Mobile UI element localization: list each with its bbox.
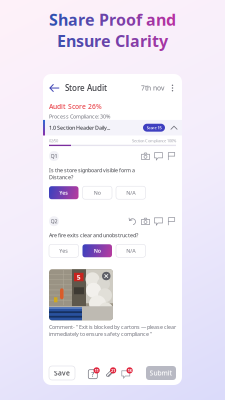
staticText: Save — [54, 369, 70, 377]
staticText: Yes — [59, 189, 68, 196]
staticText: r — [140, 30, 147, 51]
staticText: Section Compliance 100% — [132, 138, 176, 143]
staticText: 11 — [95, 368, 99, 373]
button[interactable]: Submit — [146, 366, 176, 380]
staticText: o — [126, 9, 136, 30]
button[interactable]: Comments — [121, 367, 133, 379]
staticText: No — [94, 247, 101, 254]
button[interactable]: Add photo — [141, 151, 150, 160]
staticText: 5 — [77, 273, 81, 281]
button[interactable]: No — [82, 244, 112, 257]
staticText: Are fire exits clear and unobstructed? — [49, 232, 138, 239]
staticText: 7th nov — [141, 84, 164, 92]
staticText: Process Compliance: 30% — [49, 113, 110, 120]
staticText: i — [147, 30, 152, 51]
button[interactable]: Flag issue — [167, 217, 176, 226]
staticText: Audit Score 26% — [49, 102, 102, 111]
staticText: h — [58, 9, 68, 30]
button[interactable]: More options — [164, 83, 176, 92]
staticText: r — [78, 9, 85, 30]
button[interactable]: Attachments — [104, 367, 117, 379]
staticText: l — [125, 30, 130, 51]
staticText: 18 — [128, 368, 132, 373]
button[interactable]: Save — [49, 366, 75, 380]
staticText: Is the store signboard visible form a Di… — [49, 166, 135, 181]
staticText: u — [84, 30, 94, 51]
staticText: n — [66, 30, 76, 51]
staticText: t — [152, 30, 159, 51]
staticText: Submit — [149, 369, 172, 377]
button[interactable]: No — [82, 186, 112, 199]
staticText: r — [109, 9, 116, 30]
staticText: N/A — [126, 189, 135, 196]
staticText: P — [99, 9, 109, 30]
staticText: y — [159, 30, 168, 51]
staticText: a — [68, 9, 78, 30]
button[interactable]: Back — [49, 83, 60, 93]
button[interactable]: Yes — [49, 244, 78, 257]
staticText: a — [130, 30, 140, 51]
button[interactable]: Flag issue — [167, 151, 176, 160]
button[interactable]: Undo — [128, 217, 137, 226]
staticText: No — [94, 189, 101, 196]
staticText: s — [76, 30, 84, 51]
staticText: Score 15 — [146, 125, 161, 130]
staticText: d — [166, 9, 176, 30]
staticText: e — [101, 30, 111, 51]
staticText: Q1 — [50, 152, 57, 160]
staticText: N/A — [126, 247, 135, 254]
staticText: Q2 — [50, 218, 57, 225]
staticText: n — [156, 9, 166, 30]
staticText: Store Audit — [65, 83, 107, 93]
button[interactable]: N/A — [116, 244, 145, 257]
staticText: a — [146, 9, 156, 30]
staticText: Comment- " Exit is blocked by cartons — … — [49, 323, 176, 337]
button[interactable]: Add comment — [154, 151, 163, 160]
button[interactable]: Add comment — [154, 217, 163, 226]
staticText: S — [49, 9, 58, 30]
staticText: o — [116, 9, 126, 30]
button[interactable]: N/A — [116, 186, 145, 199]
staticText: 02/50 — [49, 138, 58, 143]
staticText: Yes — [59, 247, 68, 254]
staticText: r — [94, 30, 101, 51]
button[interactable]: Help — [88, 367, 100, 379]
staticText: 21 — [111, 368, 115, 373]
staticText: e — [85, 9, 95, 30]
staticText: C — [115, 30, 125, 51]
staticText: 1.0 Section Header Daily... — [49, 124, 110, 131]
button[interactable]: Yes — [49, 186, 78, 199]
staticText: E — [57, 30, 66, 51]
staticText: ? — [91, 370, 94, 379]
button[interactable]: Add photo — [141, 217, 150, 226]
staticText — [142, 9, 146, 30]
staticText: f — [136, 9, 142, 30]
